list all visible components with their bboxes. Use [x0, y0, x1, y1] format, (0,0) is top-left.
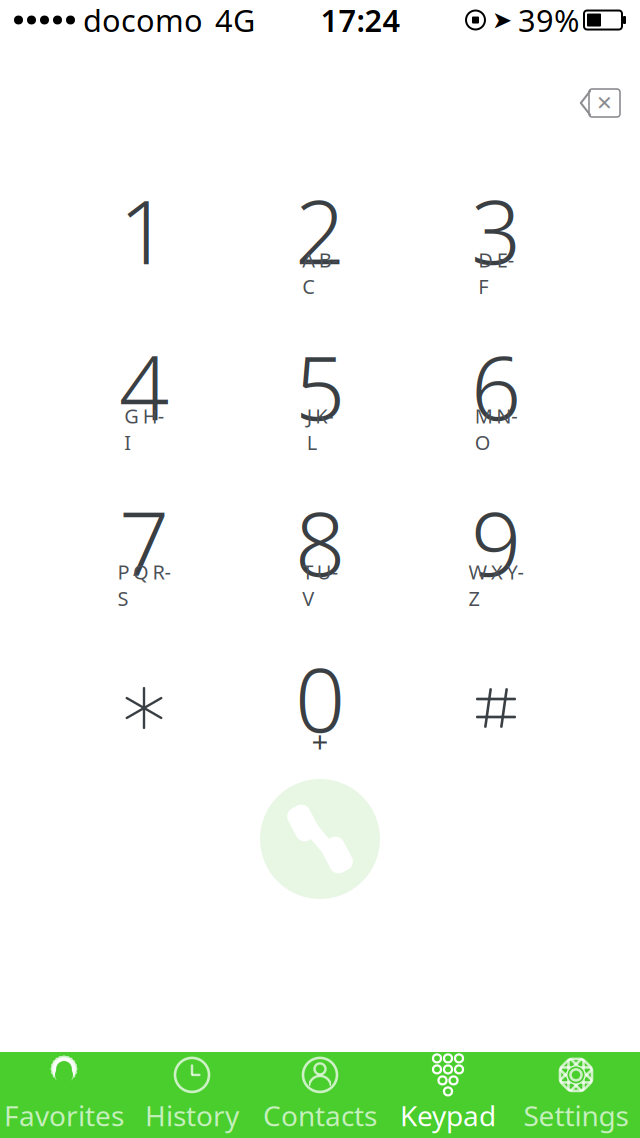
staticText: 4 [119, 328, 169, 444]
button[interactable]: 0 [232, 652, 408, 764]
staticText: + [311, 721, 328, 760]
staticText: Keypad [400, 1097, 496, 1134]
button[interactable]: 4 [56, 340, 232, 452]
staticText: 1 [119, 172, 169, 288]
staticText: docomo [83, 0, 203, 40]
staticText [141, 260, 146, 286]
button[interactable]: 7 [56, 496, 232, 608]
button[interactable]: 6 [408, 340, 584, 452]
staticText: 7 [119, 484, 169, 600]
button[interactable]: Delete [570, 76, 632, 130]
staticText: JKL [307, 402, 333, 455]
staticText: Settings [523, 1097, 628, 1134]
button[interactable]: 1 [56, 184, 232, 296]
button[interactable]: Keypad [384, 1052, 512, 1138]
staticText: 39% [518, 0, 579, 40]
button[interactable]: 5 [232, 340, 408, 452]
staticText: TUV [302, 558, 338, 611]
staticText: Contacts [263, 1097, 377, 1134]
staticText: WXYZ [468, 558, 523, 611]
staticText: PQRS [117, 558, 170, 611]
button[interactable]: History [128, 1052, 256, 1138]
staticText: History [145, 1097, 239, 1134]
staticText: 3 [471, 172, 521, 288]
staticText: 2 [295, 172, 345, 288]
staticText: 4G [215, 0, 255, 40]
staticText: 8 [295, 484, 345, 600]
button[interactable]: Favorites [0, 1052, 128, 1138]
button[interactable]: Call [255, 774, 385, 904]
staticText: 9 [471, 484, 521, 600]
button[interactable]: Pound [408, 652, 584, 764]
staticText: MNO [475, 402, 517, 455]
staticText: DEF [478, 246, 514, 299]
staticText: 17:24 [320, 0, 400, 40]
button[interactable]: 3 [408, 184, 584, 296]
staticText: 0 [295, 640, 345, 756]
staticText: GHI [124, 402, 164, 455]
button[interactable]: 2 [232, 184, 408, 296]
staticText: 6 [471, 328, 521, 444]
staticText: 5 [295, 328, 345, 444]
staticText: Favorites [4, 1097, 124, 1134]
button[interactable]: 8 [232, 496, 408, 608]
button[interactable]: Star [56, 652, 232, 764]
button[interactable]: 9 [408, 496, 584, 608]
staticText: ✕ [596, 92, 613, 114]
staticText: ➤ [492, 6, 512, 34]
button[interactable]: Settings [512, 1052, 640, 1138]
staticText: ABC [302, 246, 338, 299]
button[interactable]: Contacts [256, 1052, 384, 1138]
